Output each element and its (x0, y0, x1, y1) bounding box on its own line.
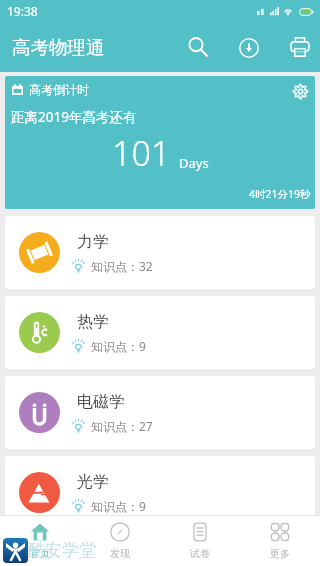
staticText: 知识点：27 (91, 418, 153, 434)
button[interactable]: Settings (290, 81, 310, 101)
button[interactable]: 发现 (80, 515, 160, 566)
staticText: 热学 (77, 312, 109, 332)
staticText: 酷安学堂 (28, 540, 96, 561)
button[interactable]: Search (174, 23, 222, 71)
button[interactable]: 电磁学 (5, 376, 315, 449)
staticText: 知识点：32 (91, 258, 153, 274)
staticText: 首页 (30, 547, 50, 560)
staticText: 光学 (77, 472, 109, 492)
button[interactable]: Download (226, 25, 271, 70)
staticText: 101 (112, 130, 171, 176)
button[interactable]: 试卷 (160, 515, 240, 566)
staticText: 发现 (110, 547, 130, 560)
staticText: 更多 (270, 547, 290, 560)
staticText: 距离2019年高考还有 (11, 108, 137, 126)
button[interactable]: 力学 (5, 216, 315, 289)
staticText: 4时21分19秒 (249, 187, 311, 201)
button[interactable]: Print (277, 24, 320, 70)
button[interactable]: 首页 (0, 515, 80, 566)
button[interactable]: 高考倒计时 (5, 76, 315, 209)
staticText: 知识点：9 (91, 498, 146, 514)
staticText: 高考倒计时 (29, 82, 89, 97)
staticText: 电磁学 (77, 392, 125, 412)
staticText: 知识点：9 (91, 338, 146, 354)
staticText: 19:38 (7, 3, 38, 19)
staticText: 高考物理通 (12, 36, 105, 59)
staticText: 力学 (77, 232, 109, 252)
button[interactable]: 热学 (5, 296, 315, 369)
button[interactable]: 光学 (5, 456, 315, 529)
staticText: Days (179, 154, 209, 172)
staticText: 试卷 (190, 547, 210, 560)
button[interactable]: 更多 (240, 515, 320, 566)
